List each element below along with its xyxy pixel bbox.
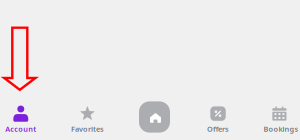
button[interactable]: Bookings (253, 96, 300, 140)
staticText: Bookings (263, 124, 298, 134)
button[interactable]: Favorites (60, 96, 114, 140)
staticText: Account (5, 124, 36, 134)
staticText: Offers (207, 124, 229, 134)
button[interactable]: Offers (191, 96, 245, 140)
button[interactable]: Account (0, 96, 48, 140)
staticText: Favorites (71, 124, 104, 134)
button[interactable]: Home (139, 101, 170, 132)
